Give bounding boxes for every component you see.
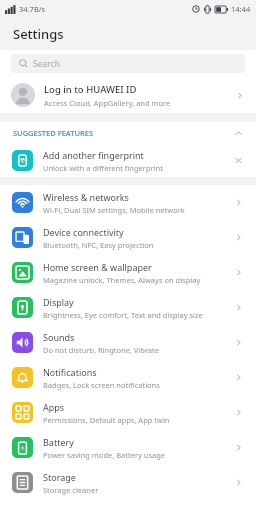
staticText: Device connectivity	[43, 226, 124, 238]
staticText: Display	[43, 296, 74, 308]
staticText: 14:44	[231, 4, 251, 14]
staticText: Badges, Lock screen notifications	[43, 380, 160, 390]
other: Dismiss suggestion	[233, 155, 244, 166]
staticText: Unlock with a different fingerprint	[43, 163, 163, 173]
button[interactable]: Wireless & networks	[0, 185, 256, 220]
staticText: Bluetooth, NFC, Easy projection	[43, 240, 154, 250]
staticText: Brightness, Eye comfort, Text and displa…	[43, 310, 203, 320]
button[interactable]: Battery	[0, 430, 256, 465]
staticText: SUGGESTED FEATURES	[13, 128, 233, 138]
button[interactable]: Storage	[0, 465, 256, 500]
staticText: Permissions, Default apps, App twin	[43, 415, 170, 425]
button[interactable]: Log in to HUAWEI ID	[0, 77, 256, 113]
other: Collapse section	[233, 128, 244, 139]
staticText: Notifications	[43, 366, 97, 378]
staticText: Search	[33, 58, 60, 70]
button[interactable]: Search	[11, 54, 245, 73]
button[interactable]: Notifications	[0, 360, 256, 395]
staticText: Wireless & networks	[43, 191, 129, 203]
button[interactable]: Apps	[0, 395, 256, 430]
staticText: 34.7B/s	[19, 4, 46, 14]
button[interactable]: Sounds	[0, 325, 256, 360]
staticText: Wi-Fi, Dual SIM settings, Mobile network	[43, 205, 185, 215]
button[interactable]: SUGGESTED FEATURES	[0, 122, 256, 144]
staticText: Storage cleaner	[43, 485, 99, 495]
staticText: Log in to HUAWEI ID	[44, 83, 137, 96]
button[interactable]: Home screen & wallpaper	[0, 255, 256, 290]
staticText: Power saving mode, Battery usage	[43, 450, 166, 460]
staticText: Battery	[43, 436, 74, 448]
staticText: Settings	[13, 25, 64, 43]
button[interactable]: Device connectivity	[0, 220, 256, 255]
staticText: Storage	[43, 471, 76, 483]
staticText: Apps	[43, 401, 65, 413]
staticText: Do not disturb, Ringtone, Vibrate	[43, 345, 160, 355]
button[interactable]: Display	[0, 290, 256, 325]
staticText: Magazine unlock, Themes, Always on displ…	[43, 275, 201, 285]
other: Open account	[234, 90, 245, 101]
staticText: Add another fingerprint	[43, 149, 144, 161]
staticText: Sounds	[43, 331, 75, 343]
staticText: Access Cloud, AppGallery, and more	[44, 98, 171, 108]
button[interactable]: Add another fingerprint	[0, 144, 256, 177]
staticText: Home screen & wallpaper	[43, 261, 152, 273]
